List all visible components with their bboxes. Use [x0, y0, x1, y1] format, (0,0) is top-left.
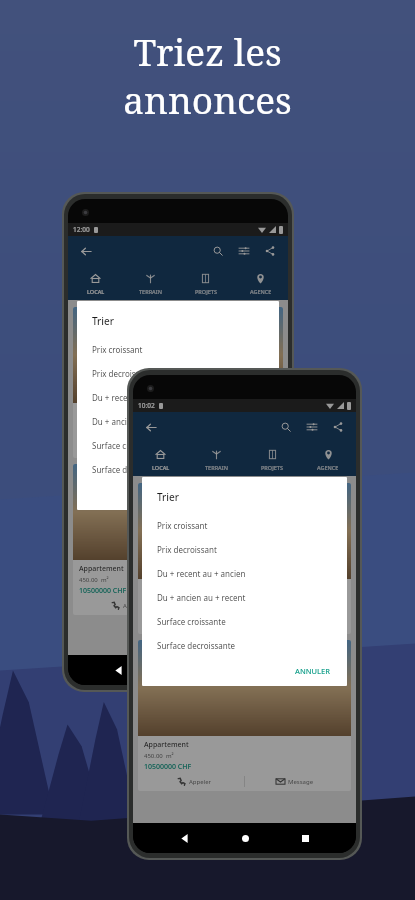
staticText: 450.00 m²	[144, 595, 174, 603]
button[interactable]: LOCAL	[68, 266, 123, 300]
button[interactable]: Back	[141, 417, 161, 437]
staticText: 10:02	[138, 401, 155, 410]
button[interactable]: Appartement	[138, 483, 351, 634]
staticText: Surface croissante	[92, 440, 161, 451]
button[interactable]: Surface croissante	[157, 609, 335, 633]
staticText: 450.00 m²	[79, 576, 109, 584]
staticText: AGENCE	[250, 288, 272, 295]
button[interactable]: Share	[328, 417, 348, 437]
button[interactable]: Du + recent au + ancien	[92, 385, 267, 409]
button[interactable]: Du + recent au + ancien	[157, 561, 335, 585]
button[interactable]: Back	[174, 828, 194, 848]
staticText: Surface decroissante	[157, 640, 236, 651]
staticText: Surface croissante	[157, 616, 226, 627]
staticText: Appeler	[123, 445, 146, 453]
button[interactable]: Appartement	[138, 640, 351, 791]
staticText: Triez les annonces	[0, 26, 415, 125]
button[interactable]: Appeler	[144, 620, 244, 629]
staticText: Du + recent au + ancien	[157, 568, 246, 579]
button[interactable]: Message	[178, 444, 277, 453]
staticText: PROJETS	[195, 288, 217, 295]
button[interactable]: Du + ancien au + recent	[92, 409, 267, 433]
button[interactable]: Recents	[295, 828, 315, 848]
button[interactable]: Surface decroissante	[92, 457, 267, 481]
staticText: Prix croissant	[92, 344, 143, 355]
staticText: PROJETS	[261, 464, 283, 471]
button[interactable]: Search	[276, 417, 296, 437]
button[interactable]: Share	[260, 241, 280, 261]
button[interactable]: Sort	[234, 241, 254, 261]
staticText: Message	[288, 778, 314, 786]
button[interactable]: Sort	[302, 417, 322, 437]
staticText: ANNULER	[295, 666, 331, 676]
button[interactable]: Appartement	[73, 464, 283, 615]
staticText: Appartement	[144, 740, 189, 750]
staticText: Surface decroissante	[92, 464, 171, 475]
button[interactable]: ANNULER	[291, 663, 335, 679]
button[interactable]: Appeler	[79, 601, 177, 610]
staticText: 12:00	[73, 225, 90, 234]
staticText: 450.00 m²	[144, 752, 174, 760]
button[interactable]: Du + ancien au + recent	[157, 585, 335, 609]
staticText: Trier	[92, 314, 115, 328]
button[interactable]: PROJETS	[178, 266, 233, 300]
button[interactable]: AGENCE	[233, 266, 288, 300]
button[interactable]: Surface decroissante	[157, 633, 335, 657]
button[interactable]: TERRAIN	[188, 442, 244, 476]
staticText: LOCAL	[87, 288, 105, 295]
staticText: Appeler	[189, 621, 212, 629]
staticText: Du + ancien au + recent	[157, 592, 246, 603]
staticText: Prix decroissant	[157, 544, 217, 555]
staticText: Prix croissant	[157, 520, 208, 531]
button[interactable]: Prix croissant	[92, 337, 267, 361]
button[interactable]: AGENCE	[300, 442, 356, 476]
button[interactable]: Surface croissante	[92, 433, 267, 457]
button[interactable]: LOCAL	[133, 442, 188, 476]
staticText: Trier	[157, 490, 180, 504]
staticText: TERRAIN	[205, 464, 228, 471]
staticText: TERRAIN	[139, 288, 162, 295]
staticText: AGENCE	[317, 464, 339, 471]
staticText: Du + ancien au + recent	[92, 416, 181, 427]
button[interactable]: Message	[245, 777, 345, 786]
button[interactable]: TERRAIN	[123, 266, 178, 300]
button[interactable]: Appeler	[144, 777, 244, 786]
staticText: LOCAL	[152, 464, 170, 471]
button[interactable]: PROJETS	[244, 442, 300, 476]
button[interactable]: Home	[235, 828, 255, 848]
staticText: Du + recent au + ancien	[92, 392, 181, 403]
button[interactable]: Prix croissant	[157, 513, 335, 537]
button[interactable]: Appartement	[73, 307, 283, 458]
staticText: 10500000 CHF	[79, 586, 127, 596]
staticText: 450.00 m²	[79, 419, 109, 427]
staticText: 10500000 CHF	[144, 762, 192, 772]
button[interactable]: Search	[208, 241, 228, 261]
staticText: Prix decroissant	[92, 368, 152, 379]
button[interactable]: Back	[76, 241, 96, 261]
button[interactable]: Prix decroissant	[157, 537, 335, 561]
staticText: Appartement	[79, 564, 124, 574]
button[interactable]: Back	[108, 660, 128, 680]
staticText: Appeler	[189, 778, 212, 786]
button[interactable]: Prix decroissant	[92, 361, 267, 385]
staticText: Appeler	[123, 602, 146, 610]
button[interactable]: Appeler	[79, 444, 177, 453]
